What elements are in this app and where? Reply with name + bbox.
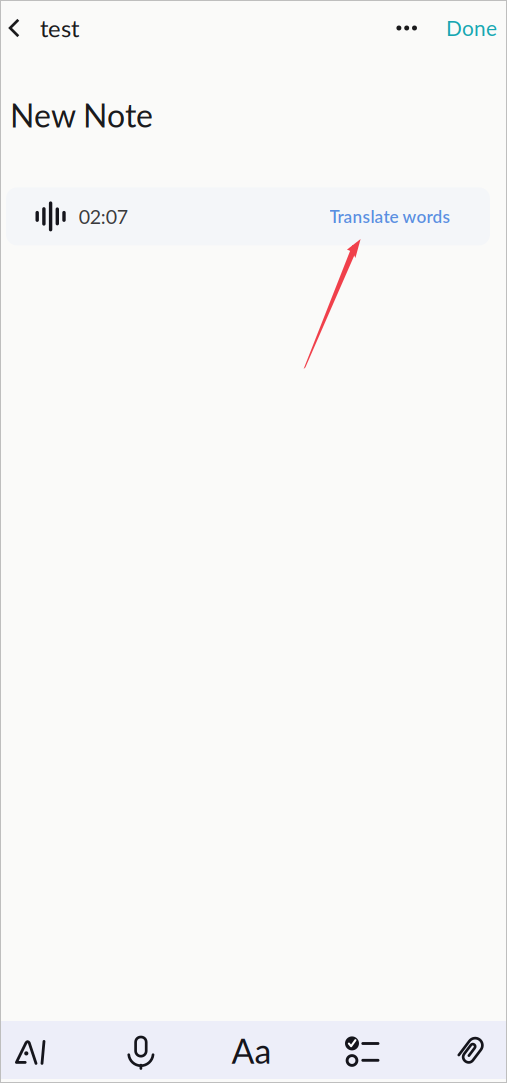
button[interactable]: test [0,6,96,50]
button[interactable]: Checklist [345,1021,379,1079]
button[interactable]: Attach [457,1019,487,1080]
button[interactable]: Translate words [320,197,459,236]
staticText: Translate words [329,206,450,227]
staticText: 02:07 [79,205,128,228]
button[interactable]: Record [127,1021,154,1078]
button[interactable]: Done [428,7,507,48]
button[interactable]: AI [15,1021,46,1079]
staticText: test [40,14,80,42]
staticText: Aa [231,1030,271,1071]
staticText: Done [446,15,497,40]
button[interactable]: More options [385,13,428,42]
button[interactable]: Text formatting [231,1017,271,1083]
staticText: New Note [10,96,153,134]
